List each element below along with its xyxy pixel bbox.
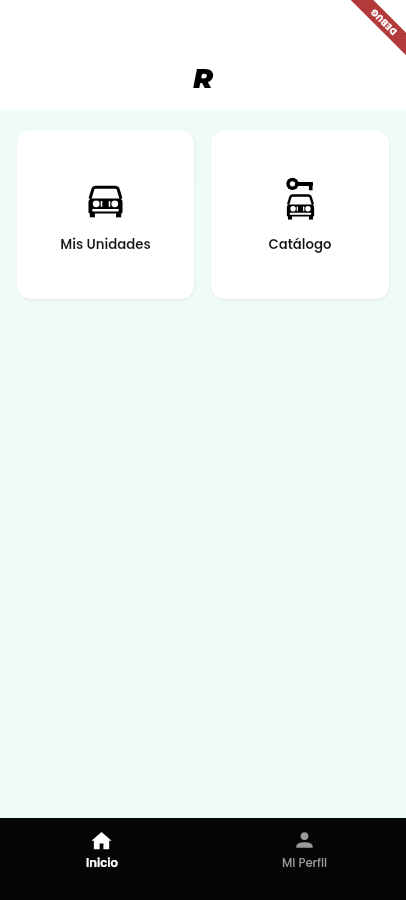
staticText: Mis Unidades <box>60 235 151 254</box>
button[interactable]: Mi Perfil <box>203 818 406 871</box>
button[interactable]: Catálogo <box>211 130 389 299</box>
staticText: Mi Perfil <box>282 855 328 871</box>
staticText: DEBUG <box>368 5 400 37</box>
staticText: R <box>193 62 214 95</box>
button[interactable]: Inicio <box>0 818 203 871</box>
staticText: Catálogo <box>268 235 332 254</box>
button[interactable]: Mis Unidades <box>17 130 194 299</box>
staticText: Inicio <box>86 855 118 871</box>
